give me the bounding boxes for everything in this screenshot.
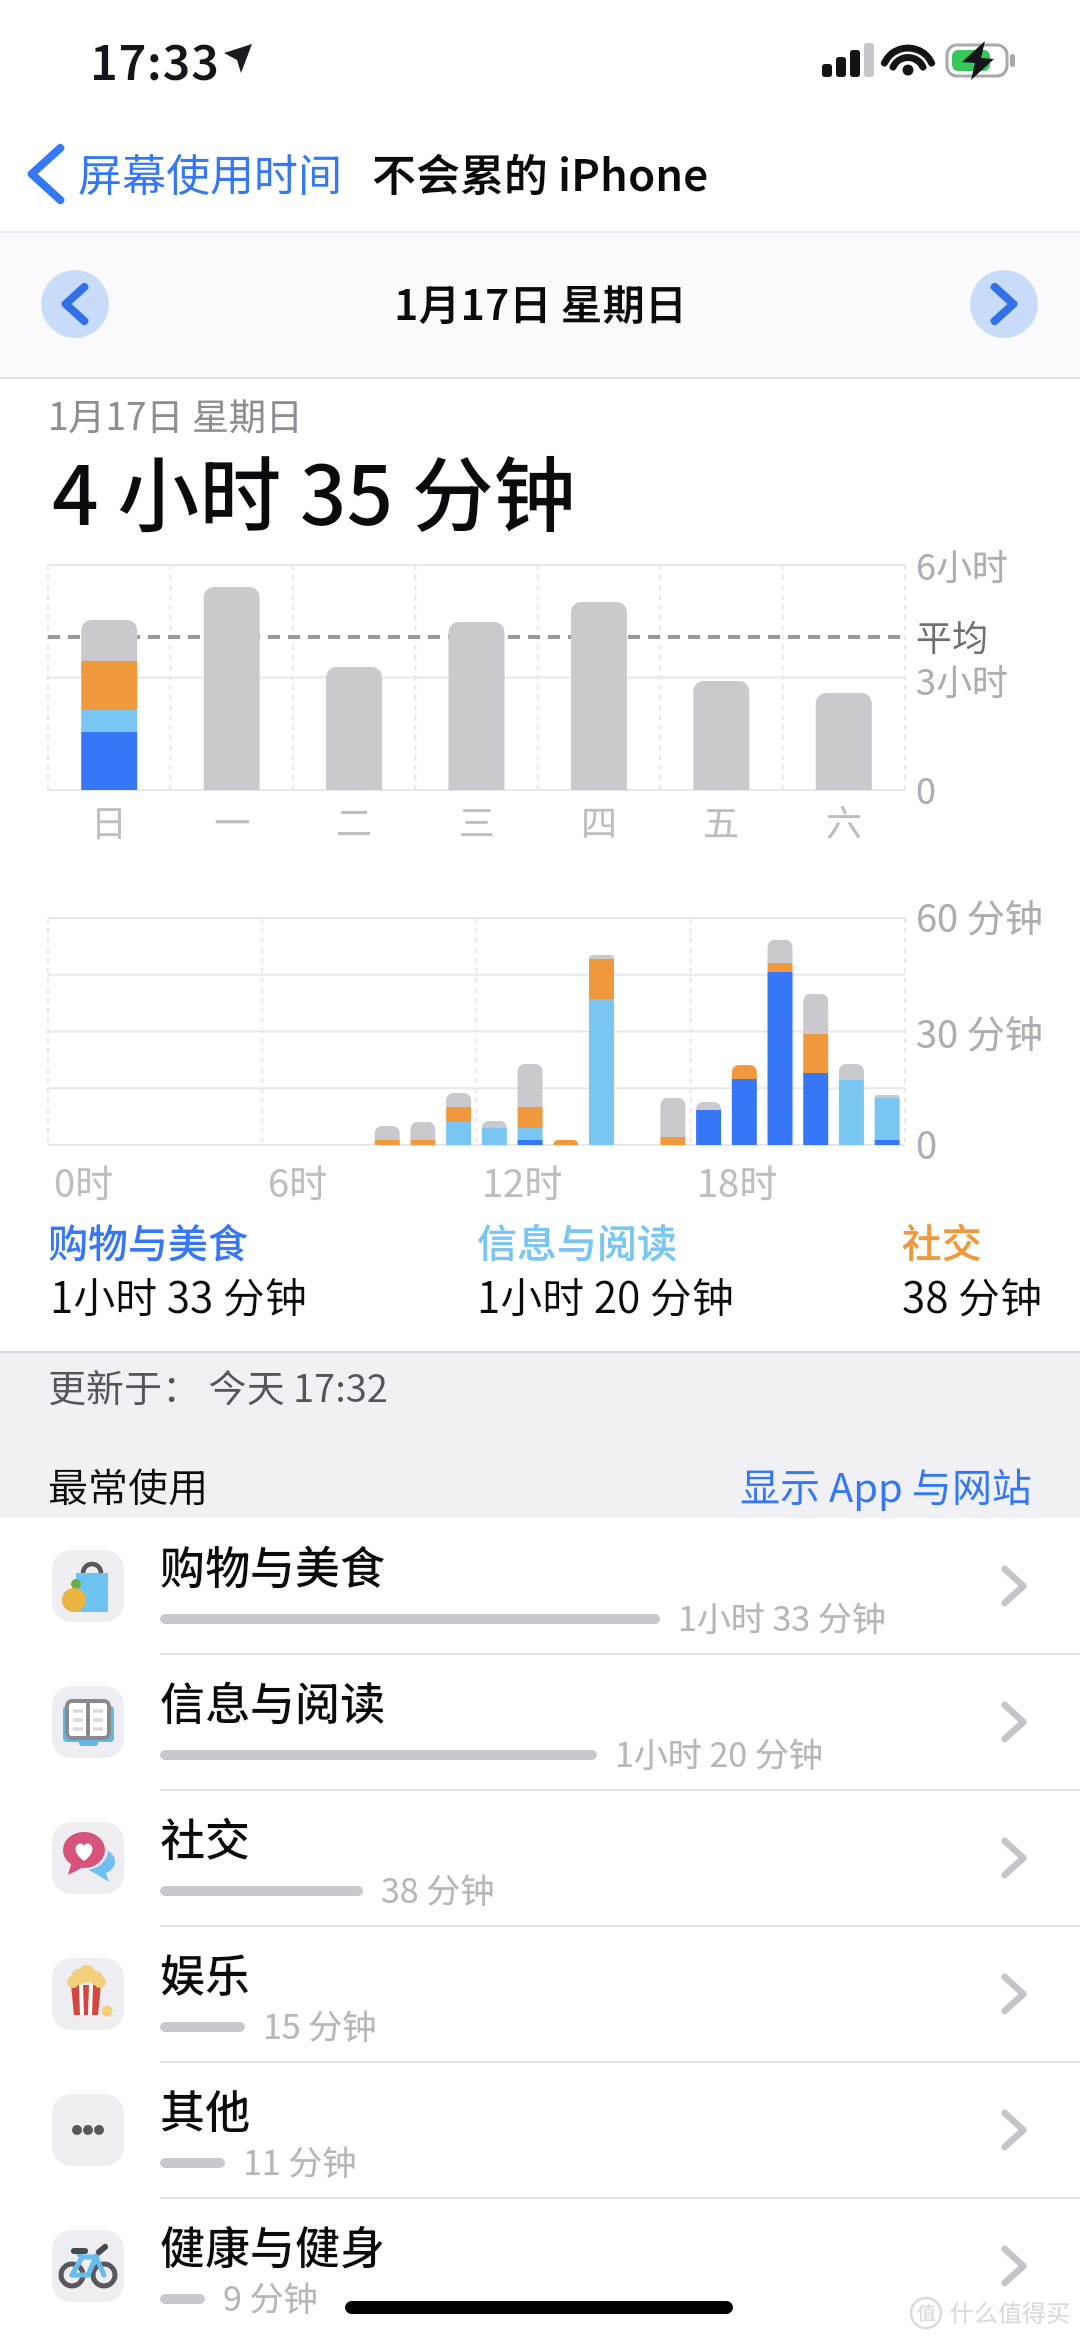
staticText: 6小时 bbox=[916, 538, 1008, 590]
staticText: 信息与阅读 bbox=[477, 1212, 677, 1270]
button[interactable]: 社交 bbox=[0, 1790, 1080, 1926]
staticText: 最常使用 bbox=[48, 1456, 208, 1514]
button[interactable]: 购物与美食 bbox=[0, 1518, 1080, 1654]
staticText: 1小时 33 分钟 bbox=[678, 1592, 886, 1641]
staticText: 购物与美食 bbox=[48, 1212, 248, 1270]
staticText: 显示 App 与网站 bbox=[740, 1456, 1032, 1514]
staticText: 社交 bbox=[160, 1804, 251, 1869]
button[interactable] bbox=[0, 130, 370, 220]
staticText: 更新于： 今天 17:32 bbox=[48, 1358, 388, 1413]
button[interactable] bbox=[41, 270, 109, 338]
staticText: 1小时 20 分钟 bbox=[477, 1264, 734, 1325]
staticText: 娱乐 bbox=[160, 1940, 251, 2005]
staticText: 信息与阅读 bbox=[160, 1668, 386, 1733]
button[interactable]: 娱乐 bbox=[0, 1926, 1080, 2062]
staticText: 1小时 20 分钟 bbox=[615, 1728, 823, 1777]
staticText: 日 bbox=[91, 794, 128, 846]
staticText: 平均 bbox=[916, 609, 989, 661]
staticText: 一 bbox=[214, 794, 251, 846]
staticText: 18时 bbox=[697, 1153, 778, 1208]
staticText: 什么值得买 bbox=[950, 2294, 1070, 2329]
button[interactable]: 信息与阅读 bbox=[0, 1654, 1080, 1790]
button[interactable]: 其他 bbox=[0, 2062, 1080, 2198]
staticText: 4 小时 35 分钟 bbox=[52, 430, 576, 549]
staticText: 17:33 bbox=[90, 24, 220, 94]
staticText: 1小时 33 分钟 bbox=[50, 1264, 307, 1325]
staticText: 六 bbox=[826, 794, 863, 846]
staticText: 三 bbox=[459, 794, 496, 846]
staticText: 12时 bbox=[482, 1153, 563, 1208]
staticText: 38 分钟 bbox=[381, 1864, 495, 1913]
staticText: 6时 bbox=[268, 1153, 328, 1208]
button[interactable] bbox=[700, 1458, 1040, 1518]
button[interactable]: 健康与健身 bbox=[0, 2198, 1080, 2334]
staticText: 五 bbox=[703, 794, 740, 846]
staticText: 38 分钟 bbox=[902, 1264, 1043, 1325]
staticText: 二 bbox=[336, 794, 373, 846]
staticText: 0时 bbox=[54, 1153, 114, 1208]
staticText: 1月17日 星期日 bbox=[394, 271, 687, 332]
staticText: 四 bbox=[581, 794, 618, 846]
staticText: 0 bbox=[916, 1115, 938, 1170]
staticText: 社交 bbox=[902, 1212, 982, 1270]
staticText: 健康与健身 bbox=[160, 2212, 386, 2277]
staticText: 0 bbox=[916, 762, 936, 814]
staticText: 值 bbox=[917, 2298, 937, 2326]
staticText: 60 分钟 bbox=[916, 888, 1043, 943]
staticText: 3小时 bbox=[916, 653, 1008, 705]
staticText: 其他 bbox=[160, 2076, 251, 2141]
staticText: 15 分钟 bbox=[263, 2000, 377, 2049]
staticText: 购物与美食 bbox=[160, 1532, 386, 1597]
button[interactable] bbox=[970, 270, 1038, 338]
staticText: 1月17日 星期日 bbox=[48, 387, 303, 441]
staticText: 11 分钟 bbox=[243, 2136, 357, 2185]
staticText: 30 分钟 bbox=[916, 1004, 1043, 1059]
staticText: 9 分钟 bbox=[223, 2272, 318, 2321]
staticText: 不会累的 iPhone bbox=[372, 140, 709, 204]
staticText: 屏幕使用时间 bbox=[78, 140, 342, 204]
